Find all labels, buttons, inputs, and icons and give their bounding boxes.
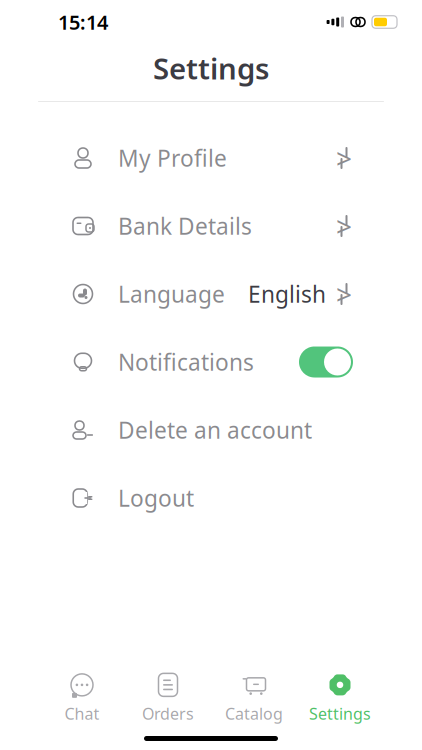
button[interactable]: My Profile xyxy=(0,124,422,192)
staticText: Delete an account xyxy=(118,415,312,445)
button[interactable]: Logout xyxy=(0,464,422,532)
staticText: > xyxy=(336,207,352,245)
staticText: Orders xyxy=(142,703,194,724)
staticText: Bank Details xyxy=(118,211,252,241)
staticText: Chat xyxy=(64,703,99,724)
staticText: > xyxy=(336,275,352,313)
button[interactable]: Orders xyxy=(125,672,211,724)
staticText: 15:14 xyxy=(58,9,108,35)
button[interactable]: Bank Details xyxy=(0,192,422,260)
staticText: > xyxy=(336,139,352,177)
button[interactable]: Chat xyxy=(39,672,125,724)
button[interactable]: Delete an account xyxy=(0,396,422,464)
staticText: Catalog xyxy=(225,703,283,724)
button[interactable]: Language xyxy=(0,260,422,328)
button[interactable]: Catalog xyxy=(211,672,297,724)
staticText: English xyxy=(248,279,326,309)
staticText: My Profile xyxy=(118,143,227,173)
button[interactable]: Settings xyxy=(297,672,383,724)
staticText: Settings xyxy=(153,48,269,87)
button[interactable]: Notifications xyxy=(0,328,422,396)
staticText: Language xyxy=(118,279,225,309)
staticText: Settings xyxy=(309,703,371,724)
staticText: Logout xyxy=(118,483,194,513)
staticText: Notifications xyxy=(118,347,254,377)
